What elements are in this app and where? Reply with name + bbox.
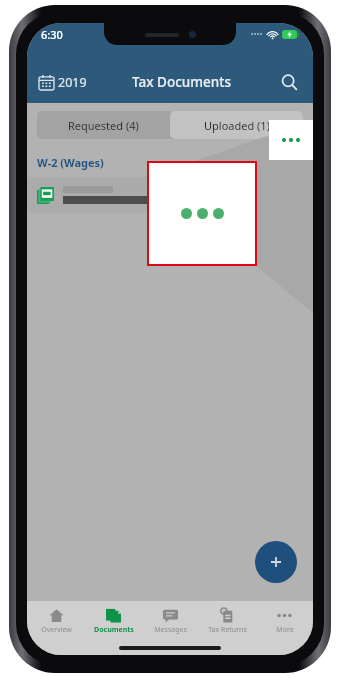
button[interactable]: More options <box>269 120 313 160</box>
button[interactable] <box>27 177 313 213</box>
staticText: W-2 (Wages) <box>37 155 104 170</box>
button[interactable]: Requested (4) <box>37 111 170 139</box>
staticText: Requested (4) <box>68 118 139 133</box>
button[interactable]: Search <box>275 68 303 96</box>
staticText: Tax Documents <box>132 73 232 91</box>
button[interactable]: Messages <box>142 601 199 641</box>
staticText: 1 <box>288 155 294 169</box>
staticText: More <box>276 625 294 635</box>
button[interactable]: Add document <box>255 541 297 583</box>
staticText: 6:30 <box>41 27 63 42</box>
button[interactable]: Overview <box>27 601 85 641</box>
button[interactable]: Uploaded (1) <box>170 111 303 139</box>
staticText: Uploaded (1) <box>204 118 270 133</box>
button[interactable]: More <box>256 601 313 641</box>
staticText: Tax Returns <box>208 625 247 635</box>
button[interactable]: Documents <box>85 601 142 641</box>
staticText: Overview <box>41 625 72 635</box>
staticText: Documents <box>94 625 134 635</box>
button[interactable]: Tax Returns <box>199 601 256 641</box>
staticText: Messages <box>154 625 187 635</box>
button[interactable]: 2019 <box>37 70 89 95</box>
staticText: 2019 <box>58 74 87 91</box>
